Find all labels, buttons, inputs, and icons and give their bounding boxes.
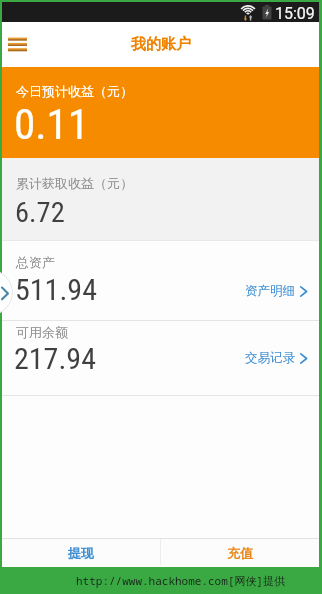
button[interactable]: 提现 <box>2 539 160 567</box>
button[interactable]: 充值 <box>161 539 319 567</box>
button[interactable] <box>4 34 30 56</box>
staticText: 总资产 <box>16 254 55 270</box>
staticText: 511.94 <box>15 272 97 307</box>
staticText: 15:09 <box>275 4 315 23</box>
button[interactable]: 交易记录 <box>245 350 319 366</box>
button[interactable] <box>0 270 13 315</box>
button[interactable]: 资产明细 <box>245 283 319 299</box>
staticText: 我的账户 <box>131 35 191 54</box>
staticText: 0.11 <box>14 99 90 149</box>
staticText: 6.72 <box>15 196 65 229</box>
staticText: http://www.hackhome.com[网侠]提供 <box>76 573 285 588</box>
staticText: 提现 <box>68 545 94 561</box>
staticText: 资产明细 <box>245 283 295 299</box>
staticText: 217.94 <box>14 341 96 376</box>
staticText: 充值 <box>227 545 253 561</box>
staticText: 交易记录 <box>245 350 295 366</box>
staticText: 可用余额 <box>16 324 68 340</box>
staticText: 今日预计收益（元） <box>16 83 133 99</box>
staticText: 累计获取收益（元） <box>16 175 133 191</box>
